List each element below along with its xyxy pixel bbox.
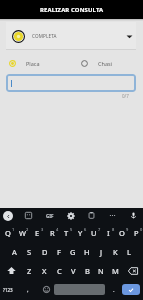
- staticText: K: [113, 247, 118, 257]
- staticText: D: [42, 247, 48, 257]
- staticText: 3: [41, 227, 44, 232]
- staticText: V: [71, 266, 76, 276]
- staticText: G: [70, 247, 76, 257]
- staticText: 6: [84, 227, 87, 232]
- staticText: T: [64, 228, 69, 238]
- button[interactable]: I: [101, 223, 115, 242]
- staticText: H: [84, 247, 90, 257]
- staticText: 5: [70, 227, 73, 232]
- button[interactable]: R: [45, 223, 59, 242]
- button[interactable]: ,: [16, 280, 39, 299]
- button[interactable]: Clipboard: [86, 210, 97, 221]
- staticText: O: [119, 228, 125, 238]
- button[interactable]: A: [7, 242, 22, 261]
- staticText: B: [85, 266, 90, 276]
- button[interactable]: Shift: [0, 261, 22, 280]
- button[interactable]: Chasi: [81, 56, 143, 70]
- button[interactable]: L: [122, 242, 136, 261]
- staticText: N: [98, 266, 104, 276]
- staticText: GIF: [46, 213, 54, 219]
- button[interactable]: E: [30, 223, 45, 242]
- button[interactable]: X: [37, 261, 52, 280]
- staticText: ,: [27, 286, 29, 294]
- button[interactable]: J: [94, 242, 108, 261]
- staticText: REALIZAR CONSULTA: [40, 6, 104, 14]
- button[interactable]: .: [106, 280, 122, 299]
- button[interactable]: ?123: [0, 280, 16, 299]
- staticText: 9: [126, 227, 129, 232]
- staticText: .: [113, 286, 115, 294]
- button[interactable]: V: [66, 261, 80, 280]
- staticText: W: [19, 228, 26, 238]
- button[interactable]: N: [94, 261, 108, 280]
- staticText: 8: [112, 227, 115, 232]
- staticText: Z: [27, 266, 32, 276]
- button[interactable]: Y: [73, 223, 87, 242]
- button[interactable]: COMPLETA: [6, 22, 136, 50]
- button[interactable]: Z: [22, 261, 37, 280]
- staticText: 0: [140, 227, 143, 232]
- staticText: L: [127, 247, 131, 257]
- staticText: 1: [12, 227, 15, 232]
- staticText: P: [134, 228, 139, 238]
- button[interactable]: Placa: [9, 56, 81, 70]
- staticText: E: [35, 228, 40, 238]
- staticText: 7: [98, 227, 101, 232]
- staticText: R: [50, 228, 55, 238]
- button[interactable]: [6, 74, 136, 92]
- staticText: COMPLETA: [32, 33, 57, 39]
- button[interactable]: Q: [0, 223, 15, 242]
- button[interactable]: B: [80, 261, 94, 280]
- button[interactable]: H: [80, 242, 94, 261]
- staticText: A: [12, 247, 17, 257]
- button[interactable]: P: [129, 223, 143, 242]
- button[interactable]: GIF: [44, 210, 55, 221]
- button[interactable]: Backspace: [122, 261, 143, 280]
- button[interactable]: Voice input: [128, 210, 139, 221]
- button[interactable]: Back: [3, 211, 13, 221]
- button[interactable]: M: [108, 261, 122, 280]
- button[interactable]: C: [52, 261, 66, 280]
- staticText: Chasi: [98, 60, 113, 67]
- button[interactable]: Stickers: [23, 210, 34, 221]
- button[interactable]: Space: [54, 284, 105, 295]
- staticText: Q: [5, 228, 11, 238]
- staticText: S: [27, 247, 32, 257]
- button[interactable]: Enter: [122, 284, 140, 295]
- button[interactable]: Settings: [65, 210, 76, 221]
- button[interactable]: K: [108, 242, 122, 261]
- button[interactable]: W: [15, 223, 30, 242]
- button[interactable]: F: [52, 242, 66, 261]
- staticText: 4: [56, 227, 59, 232]
- staticText: C: [57, 266, 62, 276]
- button[interactable]: G: [66, 242, 80, 261]
- button[interactable]: U: [87, 223, 101, 242]
- button[interactable]: T: [59, 223, 73, 242]
- button[interactable]: O: [115, 223, 129, 242]
- staticText: Placa: [26, 60, 40, 67]
- staticText: F: [57, 247, 61, 257]
- staticText: Y: [78, 228, 83, 238]
- staticText: I: [107, 228, 110, 238]
- button[interactable]: S: [22, 242, 37, 261]
- button[interactable]: D: [37, 242, 52, 261]
- staticText: 2: [26, 227, 29, 232]
- button[interactable]: Emoji: [39, 280, 53, 299]
- button[interactable]: More options: [107, 210, 118, 221]
- staticText: 0/7: [122, 93, 129, 99]
- staticText: M: [112, 266, 119, 276]
- staticText: U: [91, 228, 97, 238]
- staticText: X: [42, 266, 47, 276]
- staticText: ?123: [3, 287, 13, 293]
- staticText: J: [100, 247, 103, 257]
